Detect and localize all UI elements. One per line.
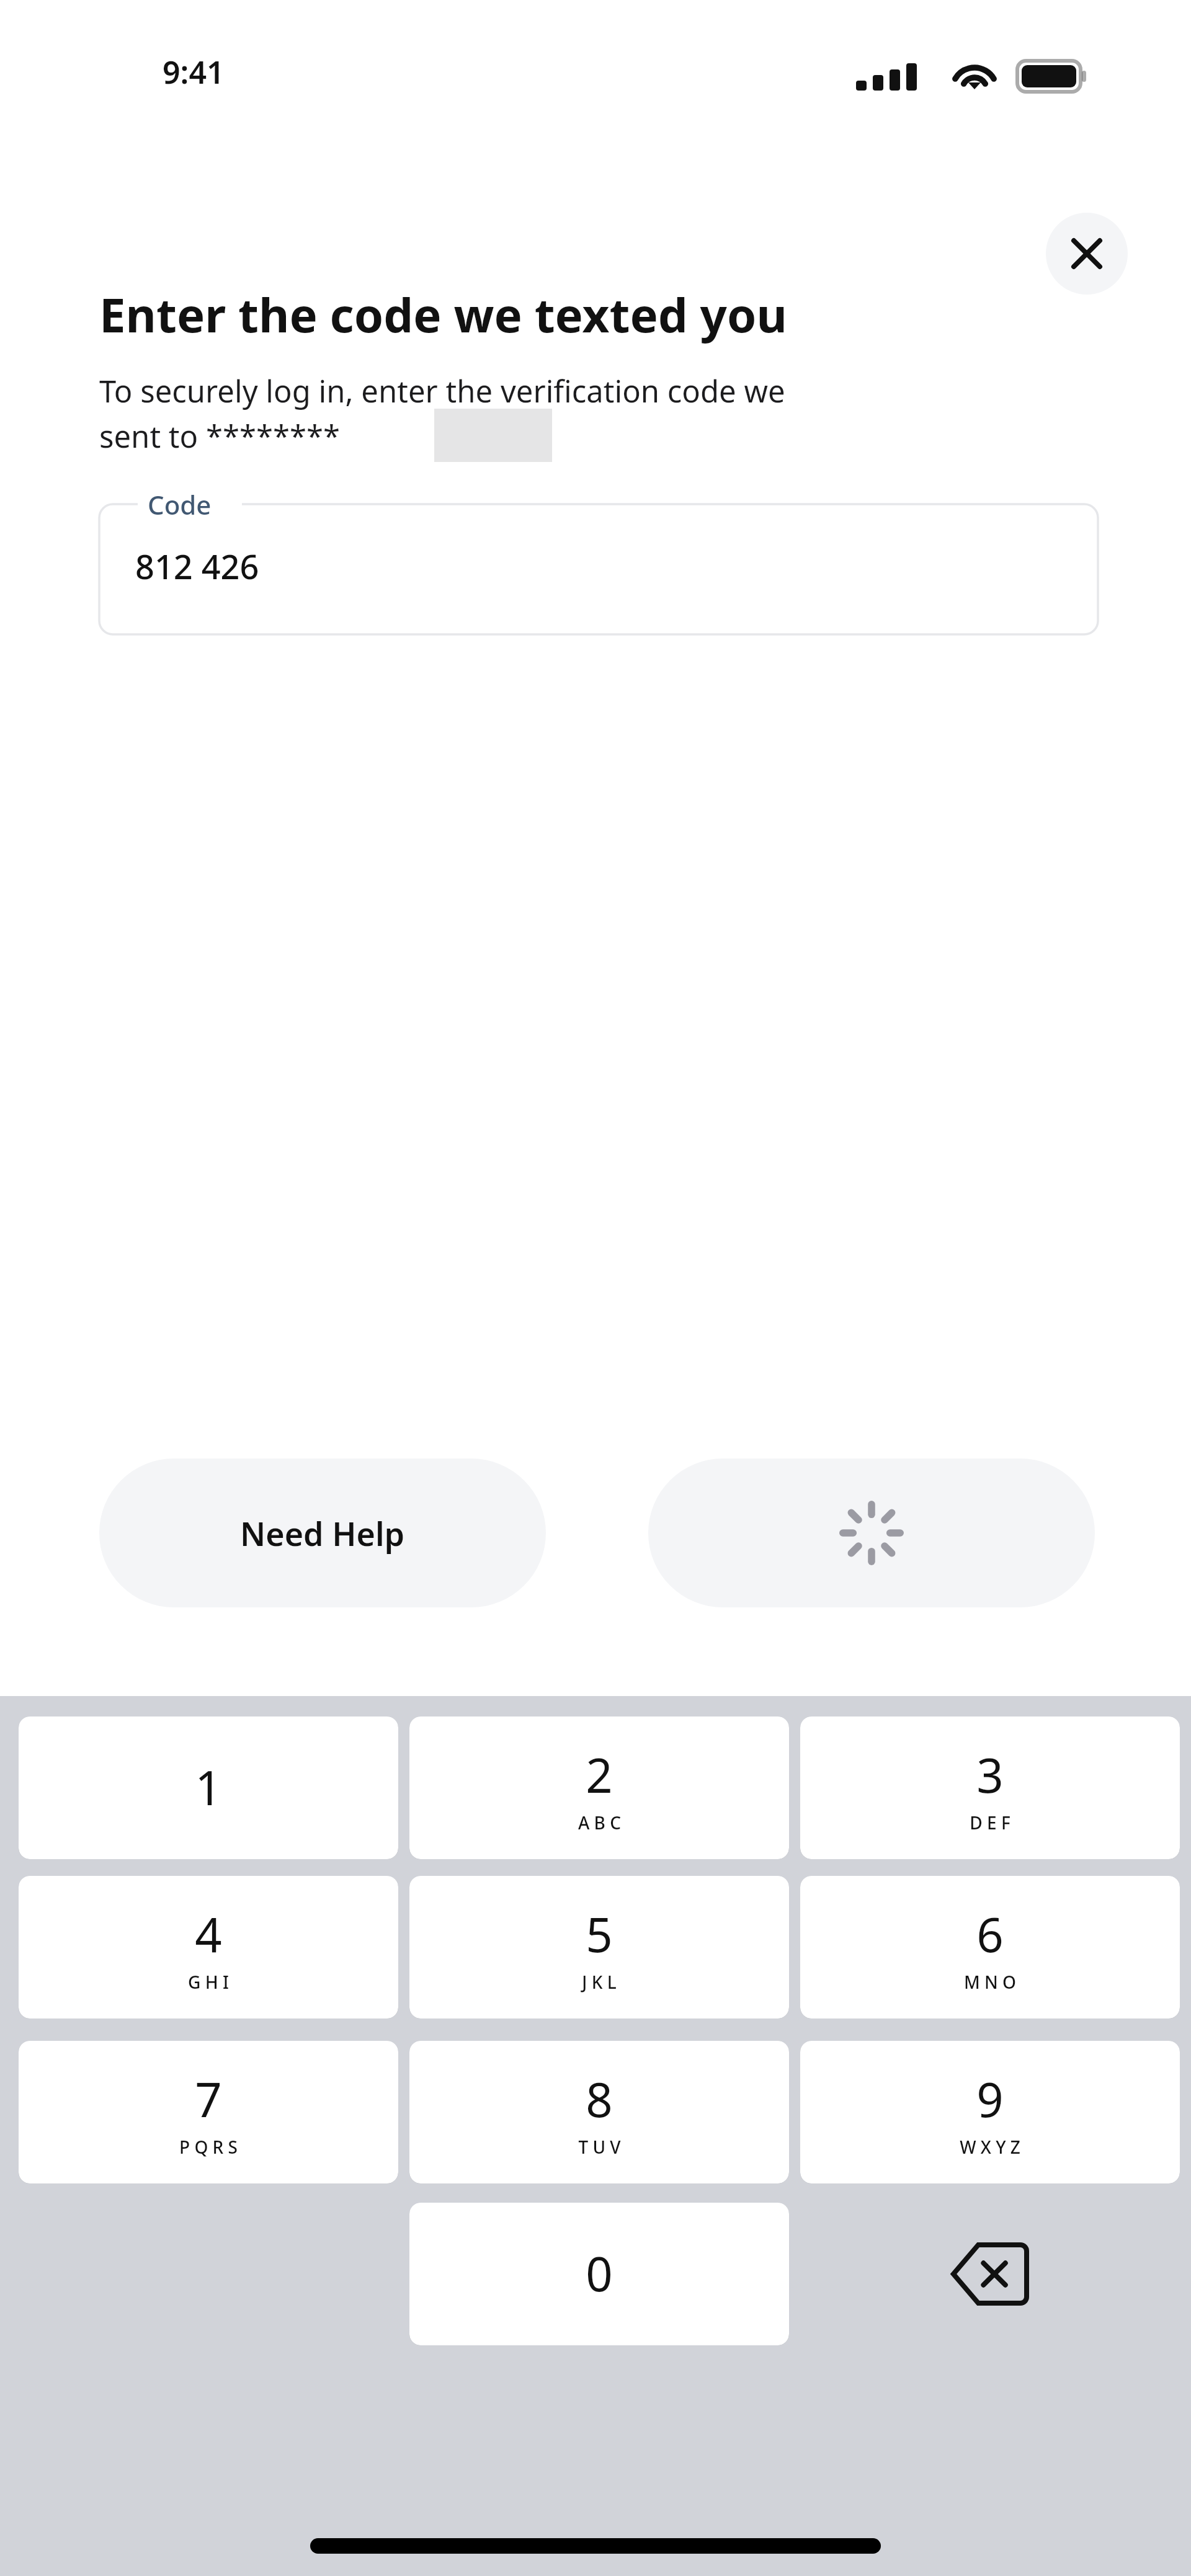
button[interactable]: 7: [19, 2041, 398, 2183]
button[interactable]: Delete: [800, 2203, 1180, 2345]
staticText: J K L: [582, 1970, 617, 1994]
staticText: 4: [195, 1902, 222, 1966]
button[interactable]: 1: [19, 1717, 398, 1859]
button[interactable]: 4: [19, 1876, 398, 2019]
staticText: 6: [976, 1902, 1004, 1966]
button[interactable]: Need Help: [99, 1459, 546, 1607]
staticText: 812 426: [135, 543, 259, 589]
staticText: G H I: [188, 1970, 229, 1994]
staticText: M N O: [964, 1970, 1016, 1994]
staticText: T U V: [578, 2135, 621, 2159]
staticText: To securely log in, enter the verificati…: [99, 370, 785, 456]
staticText: 0: [586, 2241, 613, 2306]
staticText: 3: [976, 1743, 1004, 1807]
staticText: 1: [195, 1755, 222, 1819]
staticText: Code: [148, 487, 212, 522]
button[interactable]: 6: [800, 1876, 1180, 2019]
button[interactable]: 0: [409, 2203, 789, 2345]
staticText: 2: [586, 1743, 613, 1807]
button[interactable]: 8: [409, 2041, 789, 2183]
button[interactable]: Submitting: [648, 1459, 1095, 1607]
button[interactable]: 3: [800, 1717, 1180, 1859]
button[interactable]: Close: [1046, 213, 1128, 295]
staticText: Enter the code we texted you: [99, 282, 787, 347]
staticText: 7: [195, 2067, 222, 2131]
button[interactable]: 9: [800, 2041, 1180, 2183]
staticText: 5: [586, 1902, 613, 1966]
staticText: 9: [976, 2067, 1004, 2131]
staticText: P Q R S: [179, 2135, 238, 2159]
staticText: 8: [586, 2067, 613, 2131]
button[interactable]: 2: [409, 1717, 789, 1859]
staticText: W X Y Z: [960, 2135, 1020, 2159]
staticText: A B C: [578, 1811, 621, 1834]
button[interactable]: 5: [409, 1876, 789, 2019]
staticText: D E F: [970, 1811, 1010, 1834]
staticText: 9:41: [163, 51, 225, 93]
staticText: Need Help: [240, 1511, 405, 1555]
